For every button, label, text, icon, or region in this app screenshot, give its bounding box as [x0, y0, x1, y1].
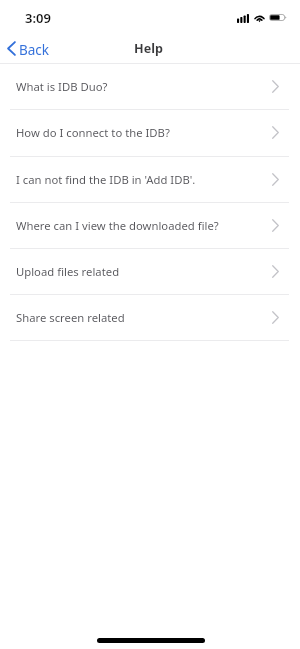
- staticText: What is IDB Duo?: [16, 79, 272, 94]
- button[interactable]: Share screen related: [0, 295, 300, 340]
- staticText: Share screen related: [16, 310, 272, 325]
- staticText: I can not find the IDB in 'Add IDB'.: [16, 172, 272, 187]
- button[interactable]: Back: [0, 38, 58, 62]
- staticText: Upload files related: [16, 264, 272, 279]
- button[interactable]: Where can I view the downloaded file?: [0, 203, 300, 248]
- staticText: How do I connect to the IDB?: [16, 125, 272, 140]
- staticText: Help: [134, 40, 163, 57]
- button[interactable]: What is IDB Duo?: [0, 64, 300, 109]
- button[interactable]: How do I connect to the IDB?: [0, 110, 300, 155]
- other: Battery level: [269, 14, 287, 21]
- other: Wi-Fi connected: [254, 14, 265, 22]
- button[interactable]: Upload files related: [0, 249, 300, 294]
- staticText: Back: [19, 41, 50, 59]
- button[interactable]: I can not find the IDB in 'Add IDB'.: [0, 157, 300, 202]
- staticText: Where can I view the downloaded file?: [16, 218, 272, 233]
- staticText: 3:09: [25, 9, 51, 27]
- other: Cellular signal strength: [237, 14, 249, 23]
